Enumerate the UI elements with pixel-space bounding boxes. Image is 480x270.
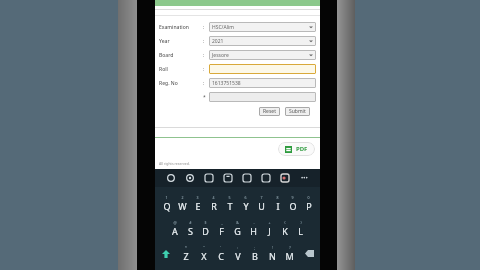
button[interactable]: Settings bbox=[184, 172, 196, 184]
staticText: P bbox=[306, 200, 312, 212]
staticText: D bbox=[202, 225, 209, 237]
staticText: 1 bbox=[165, 195, 168, 200]
staticText: Y bbox=[243, 200, 249, 212]
staticText: 3 bbox=[196, 195, 199, 200]
button[interactable]: 7 bbox=[255, 190, 268, 216]
staticText: All rights reserved. bbox=[159, 161, 190, 166]
staticText: Board bbox=[159, 52, 174, 59]
button[interactable]: Stickers bbox=[203, 172, 215, 184]
button[interactable]: Theme bbox=[279, 172, 291, 184]
staticText: PDF bbox=[296, 145, 308, 153]
staticText: ( bbox=[284, 220, 286, 225]
button[interactable] bbox=[209, 64, 316, 74]
button[interactable]: 3 bbox=[191, 190, 204, 216]
button[interactable]: 1 bbox=[160, 190, 173, 216]
staticText: Year bbox=[159, 38, 170, 45]
staticText: L bbox=[298, 225, 303, 237]
button[interactable]: Voice input bbox=[165, 172, 177, 184]
button[interactable]: Translate bbox=[260, 172, 272, 184]
button[interactable]: More options bbox=[298, 172, 310, 184]
button[interactable]: @ bbox=[168, 216, 181, 241]
staticText: A bbox=[172, 225, 178, 237]
button[interactable]: 5 bbox=[223, 190, 236, 216]
staticText: E bbox=[195, 200, 201, 212]
staticText: T bbox=[227, 200, 233, 212]
staticText: - bbox=[253, 220, 255, 225]
button[interactable]: 8 bbox=[271, 190, 284, 216]
button[interactable]: 4 bbox=[207, 190, 220, 216]
staticText: * bbox=[203, 94, 206, 101]
button[interactable]: $ bbox=[199, 216, 212, 241]
staticText: 8 bbox=[276, 195, 279, 200]
staticText: Roll bbox=[159, 66, 168, 73]
button[interactable]: " bbox=[197, 241, 210, 266]
staticText: 7 bbox=[260, 195, 263, 200]
button[interactable]: ? bbox=[283, 241, 296, 266]
staticText: : bbox=[203, 52, 205, 59]
button[interactable]: Submit bbox=[285, 107, 310, 116]
button[interactable] bbox=[209, 92, 316, 102]
staticText: N bbox=[269, 250, 276, 262]
button[interactable]: Jessore bbox=[209, 50, 316, 60]
staticText: C bbox=[218, 250, 224, 262]
button[interactable]: # bbox=[184, 216, 197, 241]
button[interactable]: + bbox=[263, 216, 276, 241]
button[interactable]: ; bbox=[248, 241, 261, 266]
staticText: U bbox=[258, 200, 265, 212]
staticText: $ bbox=[204, 220, 207, 225]
button[interactable]: 1613751538 bbox=[209, 78, 316, 88]
staticText: S bbox=[188, 225, 193, 237]
button[interactable]: : bbox=[231, 241, 244, 266]
button[interactable]: ! bbox=[266, 241, 279, 266]
staticText: Jessore bbox=[212, 52, 229, 59]
button[interactable]: 2 bbox=[176, 190, 189, 216]
staticText: M bbox=[285, 250, 294, 262]
button[interactable]: * bbox=[179, 241, 192, 266]
button[interactable]: ) bbox=[294, 216, 307, 241]
button[interactable]: & bbox=[231, 216, 244, 241]
staticText: _ bbox=[221, 220, 223, 225]
button[interactable]: PDF bbox=[278, 142, 315, 156]
staticText: HSC/Alim bbox=[212, 24, 234, 31]
staticText: 5 bbox=[228, 195, 231, 200]
button[interactable]: ( bbox=[278, 216, 291, 241]
button[interactable]: Reset bbox=[259, 107, 280, 116]
button[interactable]: 9 bbox=[286, 190, 299, 216]
staticText: 9 bbox=[291, 195, 294, 200]
button[interactable]: HSC/Alim bbox=[209, 22, 316, 32]
staticText: : bbox=[203, 80, 205, 87]
staticText: : bbox=[237, 245, 238, 250]
staticText: J bbox=[268, 225, 271, 237]
staticText: " bbox=[203, 245, 205, 250]
staticText: Z bbox=[183, 250, 189, 262]
button[interactable]: Shift bbox=[157, 241, 175, 266]
button[interactable]: Backspace bbox=[300, 241, 318, 266]
staticText: 2 bbox=[181, 195, 184, 200]
staticText: 2021 bbox=[212, 38, 224, 45]
button[interactable]: _ bbox=[215, 216, 228, 241]
staticText: W bbox=[178, 200, 187, 212]
staticText: Reg. No bbox=[159, 80, 178, 87]
staticText: + bbox=[268, 220, 271, 225]
staticText: V bbox=[235, 250, 241, 262]
staticText: : bbox=[203, 66, 205, 73]
staticText: @ bbox=[173, 220, 177, 225]
button[interactable]: 2021 bbox=[209, 36, 316, 46]
button[interactable]: Clipboard bbox=[222, 172, 234, 184]
button[interactable]: 0 bbox=[302, 190, 315, 216]
staticText: & bbox=[236, 220, 239, 225]
staticText: 4 bbox=[212, 195, 215, 200]
staticText: B bbox=[252, 250, 258, 262]
button[interactable]: - bbox=[247, 216, 260, 241]
staticText: O bbox=[289, 200, 297, 212]
staticText: ' bbox=[220, 245, 221, 250]
staticText: ••• bbox=[301, 174, 308, 182]
button[interactable]: Emoji bbox=[241, 172, 253, 184]
staticText: H bbox=[250, 225, 257, 237]
staticText: * bbox=[185, 245, 187, 250]
staticText: ? bbox=[289, 245, 291, 250]
staticText: 6 bbox=[244, 195, 247, 200]
staticText: # bbox=[189, 220, 192, 225]
button[interactable]: ' bbox=[214, 241, 227, 266]
button[interactable]: 6 bbox=[239, 190, 252, 216]
